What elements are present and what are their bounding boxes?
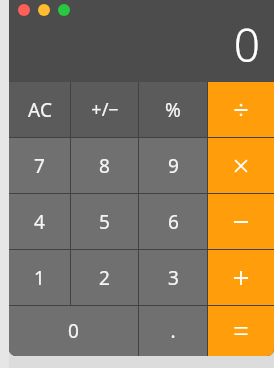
button[interactable]: Minus [208, 194, 274, 249]
button[interactable]: 8 [71, 138, 138, 193]
staticText: 0 [233, 13, 260, 76]
button[interactable]: +/− [71, 82, 138, 137]
button[interactable]: AC [9, 82, 70, 137]
staticText: AC [28, 97, 52, 123]
staticText: 5 [99, 209, 110, 235]
staticText: 2 [99, 265, 110, 291]
staticText: 7 [34, 153, 45, 179]
button[interactable]: 6 [139, 194, 207, 249]
button[interactable]: Multiply [208, 138, 274, 193]
button[interactable]: Equals [208, 306, 274, 356]
staticText: 0 [68, 318, 79, 344]
staticText: 8 [99, 153, 110, 179]
button[interactable]: Zoom [58, 4, 70, 16]
button[interactable]: Close [18, 4, 30, 16]
staticText: +/− [91, 97, 119, 122]
staticText: . [170, 318, 176, 344]
button[interactable]: 5 [71, 194, 138, 249]
button[interactable]: 7 [9, 138, 70, 193]
button[interactable]: Minimize [38, 4, 50, 16]
staticText: 3 [168, 265, 179, 291]
button[interactable]: . [139, 306, 207, 356]
button[interactable]: 1 [9, 250, 70, 305]
button[interactable]: 0 [9, 306, 138, 356]
button[interactable]: % [139, 82, 207, 137]
staticText: 1 [34, 265, 45, 291]
button[interactable]: 4 [9, 194, 70, 249]
button[interactable]: 9 [139, 138, 207, 193]
staticText: % [165, 97, 181, 123]
staticText: 4 [34, 209, 45, 235]
staticText: 6 [168, 209, 179, 235]
button[interactable]: 3 [139, 250, 207, 305]
button[interactable]: Divide [208, 82, 274, 137]
button[interactable]: Plus [208, 250, 274, 305]
button[interactable]: 2 [71, 250, 138, 305]
staticText: 9 [168, 153, 179, 179]
